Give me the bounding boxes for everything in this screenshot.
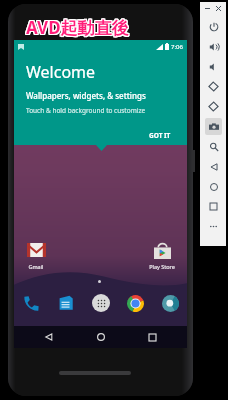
staticText: Gmail: [28, 263, 44, 270]
button[interactable]: Rotate right: [205, 98, 222, 115]
staticText: AVD起動直後: [26, 17, 129, 40]
button[interactable]: Play Store: [147, 238, 177, 272]
staticText: AVD起動直後: [27, 15, 130, 38]
staticText: 7:06: [171, 43, 183, 51]
staticText: AVD起動直後: [25, 15, 128, 38]
staticText: Play Store: [149, 263, 175, 270]
staticText: AVD起動直後: [27, 17, 130, 40]
button[interactable]: All apps: [90, 292, 112, 314]
staticText: AVD起動直後: [27, 16, 130, 39]
button[interactable]: Messenger: [55, 292, 77, 314]
staticText: AVD起動直後: [26, 15, 129, 38]
staticText: AVD起動直後: [26, 16, 129, 39]
button[interactable]: Zoom: [205, 138, 222, 155]
button[interactable]: Phone: [20, 292, 42, 314]
button[interactable]: Volume up: [205, 38, 222, 55]
button[interactable]: Chrome: [124, 292, 146, 314]
staticText: Touch & hold background to customize: [26, 106, 146, 115]
button[interactable]: Home: [205, 178, 222, 195]
button[interactable]: Screenshot: [205, 118, 222, 135]
staticText: Welcome: [26, 61, 96, 83]
button[interactable]: Volume down: [205, 58, 222, 75]
button[interactable]: Overview: [205, 198, 222, 215]
button[interactable]: Minimize: [203, 4, 212, 13]
button[interactable]: Home: [84, 326, 118, 348]
staticText: AVD起動直後: [25, 16, 128, 39]
button[interactable]: Camera: [159, 292, 181, 314]
button[interactable]: GOT IT: [143, 128, 177, 143]
button[interactable]: Recents: [135, 326, 169, 348]
button[interactable]: Close: [214, 4, 223, 13]
staticText: Wallpapers, widgets, & settings: [26, 90, 146, 101]
button[interactable]: Gmail: [24, 238, 48, 272]
button[interactable]: More: [205, 218, 222, 235]
button[interactable]: Back: [205, 158, 222, 175]
button[interactable]: Rotate left: [205, 78, 222, 95]
staticText: GOT IT: [149, 131, 171, 140]
button[interactable]: Power: [205, 18, 222, 35]
staticText: AVD起動直後: [25, 17, 128, 40]
button[interactable]: Back: [32, 326, 66, 348]
